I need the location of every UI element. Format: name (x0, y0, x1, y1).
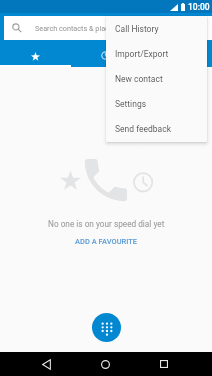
button[interactable]: Back (34, 352, 58, 376)
staticText: New contact (115, 74, 163, 84)
button[interactable]: ADD A FAVOURITE (67, 235, 146, 248)
staticText: Import/Export (115, 49, 169, 59)
button[interactable]: New contact (106, 66, 207, 91)
button[interactable]: Call History (106, 16, 207, 41)
staticText: No one is on your speed dial yet (48, 219, 165, 229)
button[interactable]: Search contacts & places (4, 16, 212, 40)
button[interactable]: Import/Export (106, 41, 207, 66)
staticText: Settings (115, 99, 147, 109)
button[interactable]: Home (93, 352, 117, 376)
staticText: ADD A FAVOURITE (75, 237, 138, 246)
staticText: Call History (115, 24, 159, 34)
button[interactable]: Recent apps (152, 352, 176, 376)
button[interactable]: Send feedback (106, 116, 207, 141)
staticText: Search contacts & places (35, 24, 117, 32)
staticText: 10:00 (188, 2, 210, 12)
button[interactable]: Open dialpad (92, 313, 121, 342)
button[interactable]: Contacts (141, 40, 212, 67)
button[interactable]: Recents (70, 40, 141, 67)
staticText: Send feedback (115, 124, 171, 134)
button[interactable]: Settings (106, 91, 207, 116)
button[interactable]: Favourites (0, 40, 70, 67)
